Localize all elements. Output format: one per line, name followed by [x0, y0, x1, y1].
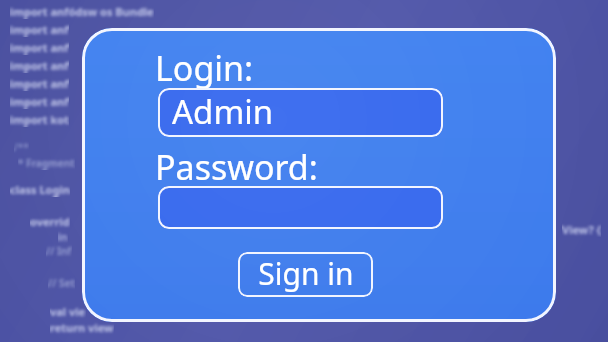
staticText: val vie [50, 304, 86, 319]
button[interactable]: Sign in [238, 252, 373, 297]
staticText: import anf [10, 58, 69, 73]
staticText: import anf [10, 94, 69, 109]
button[interactable]: Admin [158, 88, 443, 137]
staticText: in [58, 230, 68, 244]
staticText: return view [50, 320, 114, 335]
staticText: * Fragment [18, 156, 75, 170]
staticText: class Login [10, 182, 70, 197]
staticText: // Inf [46, 244, 72, 258]
staticText: import kot [10, 112, 69, 127]
staticText: Admin [172, 89, 274, 134]
staticText: /** [14, 140, 29, 154]
staticText: Login: [155, 45, 254, 91]
staticText: overrid [30, 214, 70, 229]
staticText: Sign in [258, 253, 354, 294]
staticText: View? { [562, 222, 601, 237]
staticText: import anfódsw os Bundle [10, 4, 154, 19]
button[interactable]: Password field [158, 186, 443, 229]
staticText: import anf [10, 22, 69, 37]
staticText: // Set [48, 276, 75, 290]
staticText: Password: [155, 144, 318, 190]
staticText: import anf [10, 40, 69, 55]
staticText: import anf [10, 76, 69, 91]
